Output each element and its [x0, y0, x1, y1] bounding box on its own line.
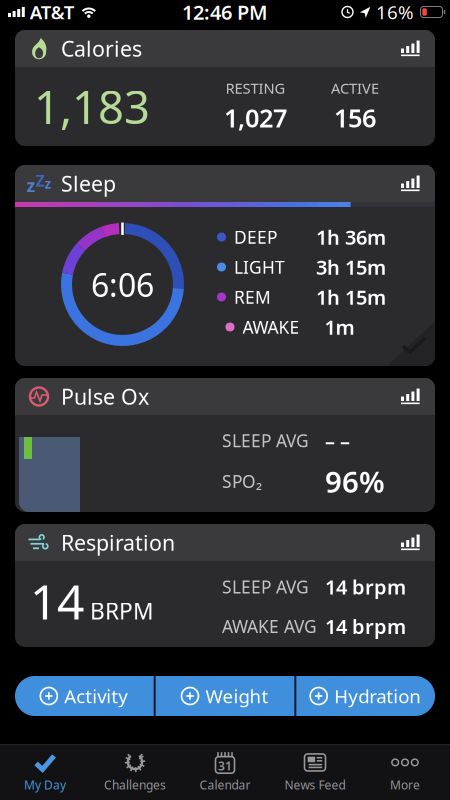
staticText: 3h 15m	[316, 254, 386, 280]
staticText: 14 brpm	[325, 613, 406, 640]
staticText: Pulse Ox	[61, 382, 149, 411]
staticText: RESTING	[225, 78, 285, 98]
button[interactable]: My Day	[0, 745, 90, 793]
staticText: SLEEP AVG	[222, 575, 309, 598]
button[interactable]: Hydration	[296, 676, 435, 716]
staticText: My Day	[24, 777, 66, 793]
button[interactable]: Activity	[15, 676, 154, 716]
staticText: z	[44, 175, 51, 192]
button[interactable]: Pulse Ox	[15, 378, 435, 512]
button[interactable]: Weight	[156, 676, 294, 716]
staticText: 156	[334, 101, 376, 134]
button[interactable]: News Feed	[270, 745, 360, 793]
staticText: Sleep	[61, 169, 116, 198]
staticText: AWAKE	[242, 315, 299, 338]
staticText: SLEEP AVG	[222, 429, 309, 452]
staticText: Activity	[64, 684, 128, 708]
button[interactable]: Calories	[15, 30, 435, 146]
button[interactable]: Respiration	[15, 524, 435, 647]
staticText: DEEP	[234, 225, 277, 248]
button[interactable]: 31	[180, 745, 270, 793]
staticText: LIGHT	[234, 255, 285, 278]
staticText: SPO₂	[222, 470, 262, 493]
staticText: Challenges	[104, 777, 166, 793]
button[interactable]: Challenges	[90, 745, 180, 793]
staticText: REM	[234, 285, 271, 308]
staticText: Respiration	[61, 528, 175, 557]
staticText: Weight	[205, 684, 268, 708]
staticText: 1h 36m	[316, 224, 386, 250]
staticText: 12:46 PM	[182, 0, 268, 25]
staticText: z	[26, 174, 35, 197]
staticText: AT&T	[30, 0, 75, 24]
staticText: 14	[30, 569, 84, 633]
staticText: 1,183	[34, 76, 150, 137]
staticText: 6:06	[91, 263, 154, 306]
staticText: 1,027	[224, 101, 287, 134]
button[interactable]: z	[15, 165, 435, 366]
staticText: 96%	[325, 462, 385, 501]
staticText: News Feed	[284, 777, 345, 793]
staticText: Calendar	[199, 777, 250, 793]
staticText: Z	[35, 170, 44, 191]
staticText: – –	[325, 427, 350, 454]
button[interactable]: More	[360, 745, 450, 793]
staticText: Hydration	[334, 684, 421, 708]
staticText: ACTIVE	[331, 78, 379, 98]
staticText: Calories	[61, 34, 142, 63]
staticText: 31	[218, 758, 232, 774]
staticText: 1h 15m	[316, 284, 386, 310]
staticText: AWAKE AVG	[222, 615, 317, 638]
staticText: More	[390, 777, 420, 793]
staticText: 16%	[376, 0, 414, 24]
staticText: BRPM	[90, 596, 154, 626]
staticText: 14 brpm	[325, 573, 406, 600]
staticText: 1m	[324, 314, 354, 340]
